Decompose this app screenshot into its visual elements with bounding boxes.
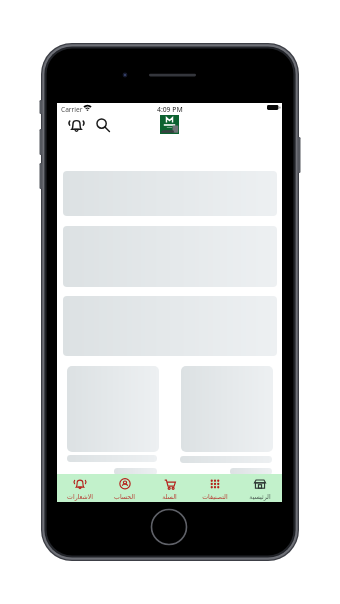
staticText: التصنيفات xyxy=(202,493,228,500)
staticText: الرئيسية xyxy=(249,493,271,500)
button[interactable]: السلة xyxy=(147,474,192,502)
button[interactable]: الحساب xyxy=(102,474,147,502)
button[interactable]: التصنيفات xyxy=(192,474,237,502)
staticText: 4:09 PM xyxy=(157,105,183,114)
button[interactable]: Notifications xyxy=(65,114,87,136)
button[interactable]: الاشعارات xyxy=(57,474,102,502)
staticText: الحساب xyxy=(114,493,135,500)
button[interactable]: Search xyxy=(92,114,114,136)
staticText: السلة xyxy=(162,493,177,500)
staticText: Carrier xyxy=(61,105,83,114)
staticText: الاشعارات xyxy=(67,493,93,500)
button[interactable]: App logo xyxy=(160,115,179,134)
button[interactable]: الرئيسية xyxy=(237,474,282,502)
